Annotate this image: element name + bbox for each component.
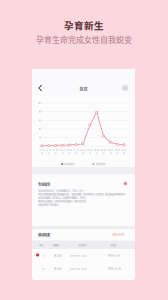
button[interactable]: 17 (32, 249, 135, 262)
staticText: 测试值变化 (64, 162, 74, 166)
button[interactable]: 返回 (36, 83, 46, 93)
staticText: 第21天 (54, 254, 62, 257)
staticText: 08-04 (101, 149, 106, 152)
staticText: 07-28 (53, 149, 58, 152)
staticText: 40 (38, 127, 40, 130)
staticText: 15 (48, 152, 50, 155)
staticText: 测试时间 (78, 243, 86, 247)
staticText: 序号 (39, 243, 43, 247)
staticText: 查看历史记录 (112, 233, 124, 236)
staticText: 07-29 (60, 149, 65, 152)
staticText: 22 (96, 152, 98, 155)
staticText: 07-30 (67, 149, 72, 152)
staticText: 测试值 (110, 243, 116, 247)
staticText: 07-31 (74, 149, 79, 152)
staticText: 14 (41, 152, 43, 155)
staticText: 08-05 (108, 149, 113, 152)
staticText: 20 (38, 136, 40, 139)
staticText: 阴性(9.14) (108, 254, 120, 257)
staticText: 25 (116, 152, 118, 155)
staticText: 08-06 (115, 149, 120, 152)
staticText: 专业指导 (38, 182, 50, 187)
staticText: 2022-07-31 10:28 (70, 267, 86, 270)
staticText: 阴性(10.38) (108, 267, 121, 270)
staticText: 16 (55, 152, 57, 155)
staticText: 07-26 (39, 149, 44, 152)
staticText: 您2022年04月01日，月经周期第21天，当日10:23分 您的记录体温是36… (38, 189, 127, 206)
staticText: 测试结果 (38, 232, 50, 237)
staticText: 08-03 (94, 149, 99, 152)
staticText: 16 (42, 267, 44, 270)
staticText: 21 (89, 152, 91, 155)
staticText: 周期天 (53, 243, 59, 247)
staticText: 17 (42, 254, 44, 257)
staticText: 80 (38, 110, 40, 113)
staticText: 60 (38, 118, 40, 122)
staticText: 第20天 (54, 267, 62, 270)
staticText: 17 (61, 152, 63, 155)
button[interactable]: 查看历史记录 (111, 233, 125, 236)
staticText: 08-01 (80, 149, 85, 152)
staticText: 08-07 (122, 149, 127, 152)
staticText: 07-27 (46, 149, 51, 152)
button[interactable]: 更多 (121, 84, 129, 92)
staticText: 08-02 (87, 149, 92, 152)
staticText: 体温值变化 (96, 162, 106, 166)
staticText: 20 (82, 152, 84, 155)
staticText: 孕育新生 (64, 18, 104, 32)
staticText: 24 (109, 152, 111, 155)
staticText: 孕育生命完成女性自我蜕变 (36, 33, 132, 45)
staticText: 26 (123, 152, 125, 155)
staticText: 2022-08-01 10:22 (70, 254, 86, 257)
staticText: 18 (68, 152, 70, 155)
staticText: 19 (75, 152, 77, 155)
staticText: 23 (102, 152, 104, 155)
staticText: 100 (37, 101, 40, 104)
staticText: 数据 (79, 86, 87, 92)
button[interactable]: 16 (32, 262, 135, 275)
